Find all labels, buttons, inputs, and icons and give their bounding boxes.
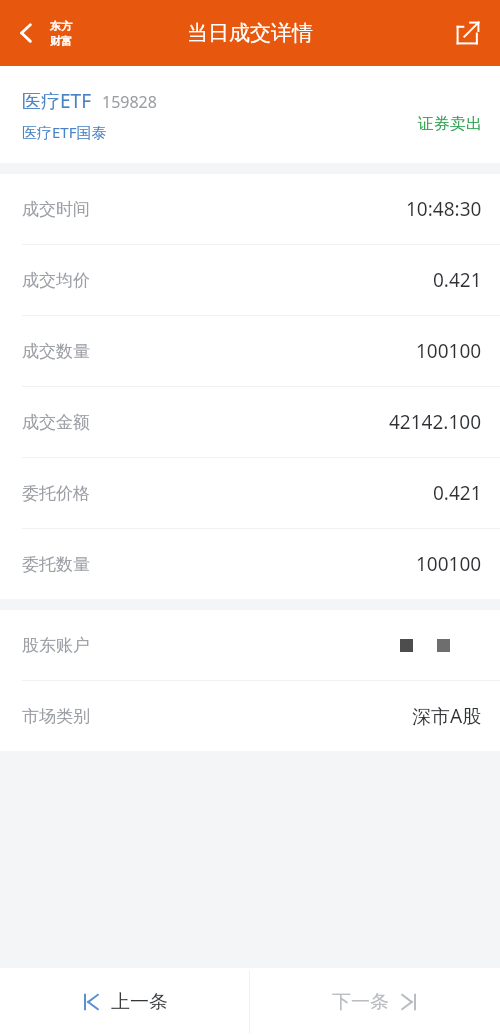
- button[interactable]: 医疗ETF: [0, 66, 500, 163]
- button[interactable]: 成交数量: [0, 316, 500, 386]
- button[interactable]: 成交金额: [0, 387, 500, 457]
- button[interactable]: 成交均价: [0, 245, 500, 315]
- button[interactable]: 成交时间: [0, 174, 500, 244]
- button[interactable]: 市场类别: [0, 681, 500, 751]
- staticText: 成交均价: [22, 270, 90, 291]
- staticText: 成交数量: [22, 341, 90, 362]
- staticText: 0.421: [433, 267, 482, 293]
- staticText: 委托价格: [22, 483, 90, 504]
- staticText: 股东账户: [22, 635, 90, 656]
- button[interactable]: 下一条: [250, 968, 500, 1036]
- button[interactable]: Back: [4, 11, 48, 55]
- staticText: 100100: [416, 338, 482, 364]
- staticText: 成交时间: [22, 199, 90, 220]
- staticText: 东方: [50, 19, 72, 33]
- staticText: 下一条: [332, 990, 389, 1014]
- button[interactable]: Share: [446, 11, 490, 55]
- button[interactable]: 股东账户: [0, 610, 500, 680]
- staticText: 医疗ETF: [22, 88, 91, 114]
- staticText: 42142.100: [389, 409, 482, 435]
- staticText: 成交金额: [22, 412, 90, 433]
- staticText: 深市A股: [412, 703, 482, 729]
- button[interactable]: East Money: [50, 19, 72, 48]
- staticText: 159828: [102, 91, 157, 113]
- button[interactable]: 委托数量: [0, 529, 500, 599]
- button[interactable]: 委托价格: [0, 458, 500, 528]
- staticText: 当日成交详情: [187, 20, 313, 46]
- staticText: 医疗ETF国泰: [22, 122, 107, 142]
- staticText: 委托数量: [22, 554, 90, 575]
- staticText: 上一条: [111, 990, 168, 1014]
- staticText: 市场类别: [22, 706, 90, 727]
- staticText: 证券卖出: [418, 114, 482, 134]
- staticText: 财富: [50, 34, 72, 48]
- staticText: 0.421: [433, 480, 482, 506]
- staticText: 10:48:30: [406, 196, 482, 222]
- staticText: 100100: [416, 551, 482, 577]
- button[interactable]: 上一条: [0, 968, 249, 1036]
